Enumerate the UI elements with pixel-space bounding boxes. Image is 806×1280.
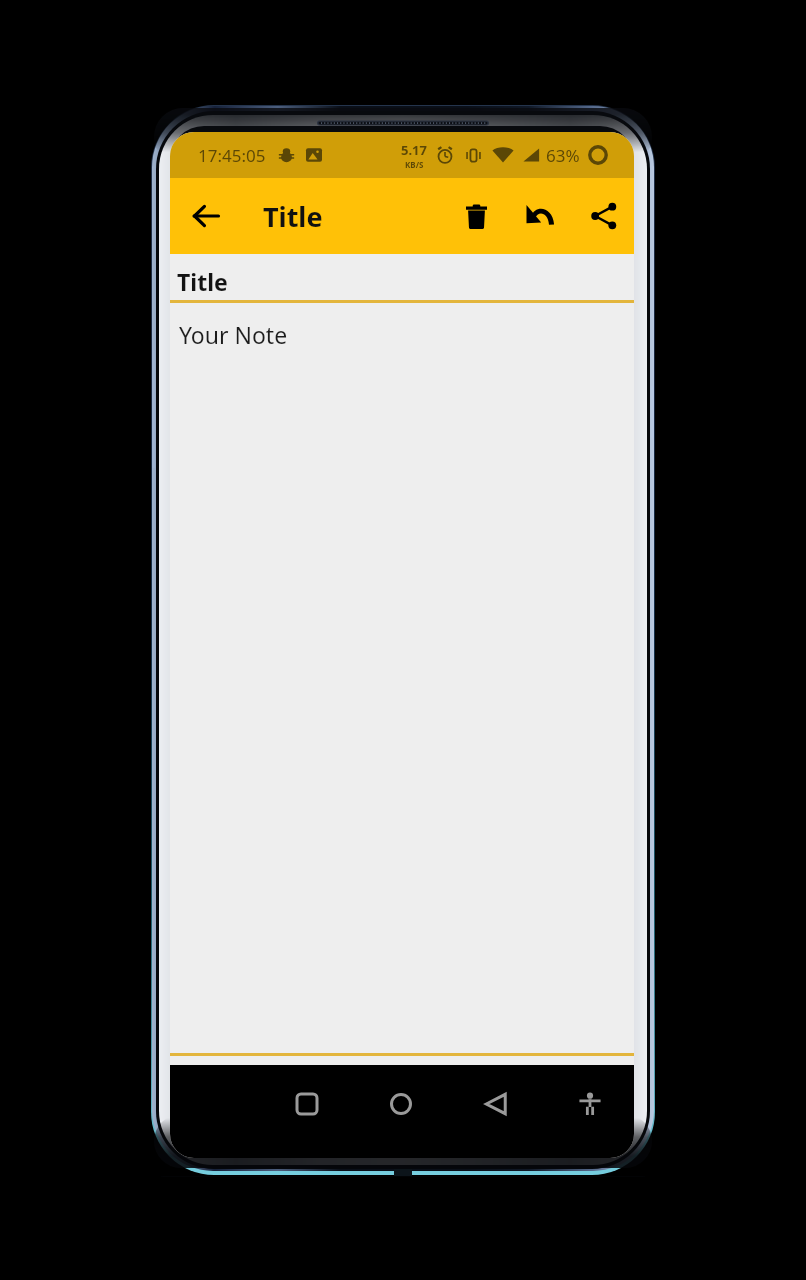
button[interactable]: Home [375, 1078, 427, 1130]
staticText: Your Note [179, 319, 288, 350]
button[interactable]: Back [178, 188, 234, 244]
button[interactable]: Accessibility [564, 1078, 616, 1130]
staticText: KB/S [405, 159, 424, 170]
button[interactable]: Recents [281, 1078, 333, 1130]
staticText: 17:45:05 [198, 144, 266, 167]
staticText: 63% [546, 144, 580, 167]
button[interactable]: Title [170, 254, 634, 303]
button[interactable]: Share [576, 188, 632, 244]
button[interactable]: Delete [448, 188, 504, 244]
staticText: 5.17 [401, 141, 427, 159]
button[interactable]: Back [470, 1078, 522, 1130]
staticText: Title [263, 198, 323, 235]
button[interactable]: Your Note [170, 303, 634, 1056]
button[interactable]: Undo [512, 188, 568, 244]
staticText: Title [177, 266, 228, 297]
